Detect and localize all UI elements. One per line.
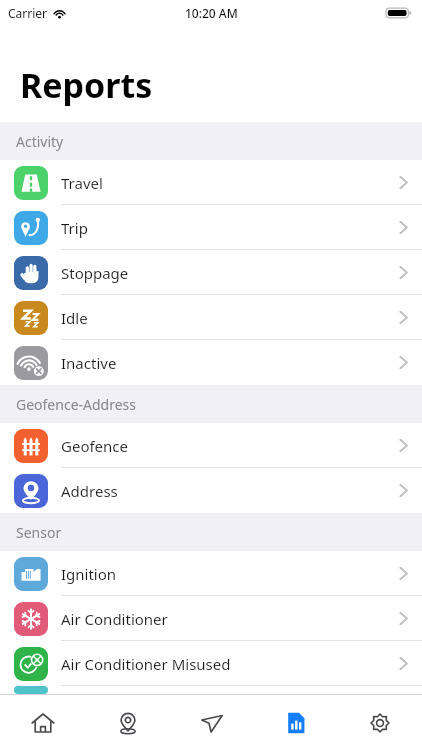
button[interactable]: Geofence [0,423,422,468]
staticText: Geofence-Address [16,395,137,414]
button[interactable]: Travel [0,160,422,205]
staticText: 10:20 AM [185,5,238,21]
staticText: Activity [16,132,64,151]
button[interactable]: Places [85,695,170,750]
staticText: Air Conditioner [61,609,168,629]
button[interactable]: Idle [0,295,422,340]
staticText: Stoppage [61,263,129,283]
button[interactable]: Inactive [0,340,422,385]
staticText: Ignition [61,564,117,584]
staticText: Geofence [61,436,129,456]
staticText: Trip [61,218,88,238]
button[interactable]: Air Conditioner [0,596,422,641]
staticText: Sensor [16,523,62,542]
staticText: Idle [61,308,88,328]
staticText: Travel [61,173,103,193]
button[interactable]: Stoppage [0,250,422,295]
button[interactable]: Navigate [170,695,254,750]
button[interactable]: Reports [254,695,338,750]
staticText: Inactive [61,353,117,373]
button[interactable]: Ignition [0,551,422,596]
button[interactable]: Address [0,468,422,513]
staticText: Air Conditioner Misused [61,654,231,674]
staticText: Address [61,481,118,501]
button[interactable]: Air Conditioner Misused [0,641,422,686]
staticText: Carrier [8,5,48,21]
staticText: Reports [20,62,153,108]
button[interactable]: Trip [0,205,422,250]
button[interactable]: Home [0,695,85,750]
button[interactable]: Settings [338,695,422,750]
